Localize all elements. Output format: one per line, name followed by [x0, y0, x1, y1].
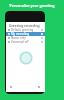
staticText: Name only — [11, 36, 26, 40]
button[interactable]: Record — [19, 51, 33, 65]
staticText: Personalize your greeting — [2, 3, 62, 8]
button[interactable]: Name only — [6, 36, 45, 40]
staticText: Greeting recording — [9, 23, 40, 28]
button[interactable]: Default greeting — [6, 28, 45, 32]
staticText: My recording — [11, 32, 29, 36]
button[interactable]: My recording — [6, 32, 45, 36]
button[interactable]: Voicemail off — [6, 40, 45, 44]
staticText: Default greeting — [11, 28, 34, 32]
staticText: Voicemail off — [11, 40, 29, 44]
